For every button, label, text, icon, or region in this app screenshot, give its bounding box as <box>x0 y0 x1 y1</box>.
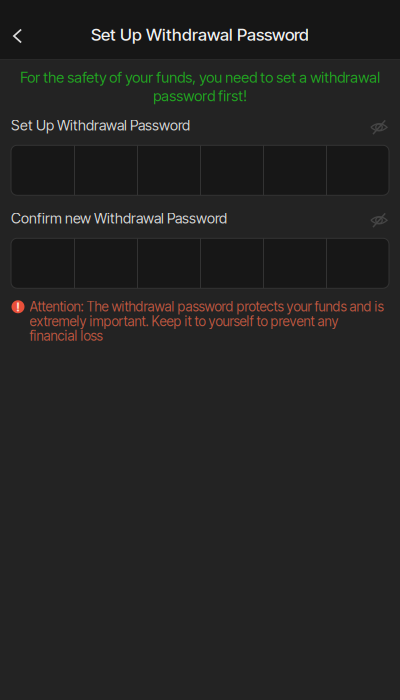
button[interactable]: Show password <box>369 210 389 230</box>
staticText: Confirm new Withdrawal Password <box>11 210 227 227</box>
staticText: Set Up Withdrawal Password <box>91 24 309 45</box>
button[interactable]: Password entry field <box>11 238 389 288</box>
button[interactable]: Password entry field <box>11 145 389 195</box>
staticText: Attention: The withdrawal password prote… <box>29 299 383 343</box>
button[interactable]: Back <box>0 21 35 51</box>
staticText: Set Up Withdrawal Password <box>11 117 190 134</box>
staticText: ! <box>16 299 20 314</box>
button[interactable]: Show password <box>369 117 389 137</box>
staticText: For the safety of your funds, you need t… <box>20 68 380 105</box>
